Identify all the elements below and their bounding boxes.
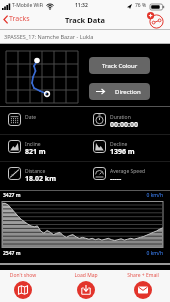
staticText: Direction xyxy=(115,88,141,96)
staticText: Date xyxy=(25,114,37,121)
staticText: Distance xyxy=(25,168,46,175)
staticText: Share + Email xyxy=(121,272,165,279)
staticText: 18.02 km xyxy=(25,174,56,184)
button[interactable]: Decline xyxy=(85,138,170,165)
staticText: 0 km/h xyxy=(0,192,163,199)
button[interactable]: Average Speed xyxy=(85,165,170,192)
button[interactable]: Load Map xyxy=(64,270,108,302)
staticText: ----- xyxy=(110,174,122,184)
staticText: 11:32 xyxy=(75,2,88,9)
button[interactable]: Duration xyxy=(85,111,170,138)
button[interactable]: 3PASSES_17: Namche Bazar - Lukla xyxy=(4,33,94,40)
button[interactable]: Tracks xyxy=(3,14,30,24)
staticText: 76 % xyxy=(135,2,147,9)
staticText: Track Data xyxy=(0,15,170,25)
staticText: Load Map xyxy=(64,272,108,279)
staticText: 0 km/h xyxy=(0,250,163,257)
button[interactable]: Distance xyxy=(0,165,85,192)
staticText: Duration xyxy=(110,114,131,121)
button[interactable] xyxy=(146,12,166,30)
staticText: 1396 m xyxy=(110,147,135,157)
staticText: Tracks xyxy=(9,14,30,24)
staticText: T-Mobile WiFi xyxy=(12,2,44,9)
button[interactable]: Date xyxy=(0,111,85,138)
staticText: Decline xyxy=(110,141,128,148)
staticText: Don't show xyxy=(1,272,45,279)
staticText: Track Colour xyxy=(102,62,138,70)
staticText: Incline xyxy=(25,141,41,148)
button[interactable]: Don't show xyxy=(1,270,45,302)
staticText: 00:00:00 xyxy=(110,120,138,130)
staticText: 821 m xyxy=(25,147,46,157)
button[interactable]: Share + Email xyxy=(121,270,165,302)
staticText: 3427 m xyxy=(3,192,21,199)
button[interactable]: Track Colour xyxy=(89,57,150,74)
button[interactable]: Incline xyxy=(0,138,85,165)
button[interactable]: Direction xyxy=(89,83,150,100)
staticText: Average Speed xyxy=(110,168,146,175)
staticText: 2547 m xyxy=(3,250,21,257)
